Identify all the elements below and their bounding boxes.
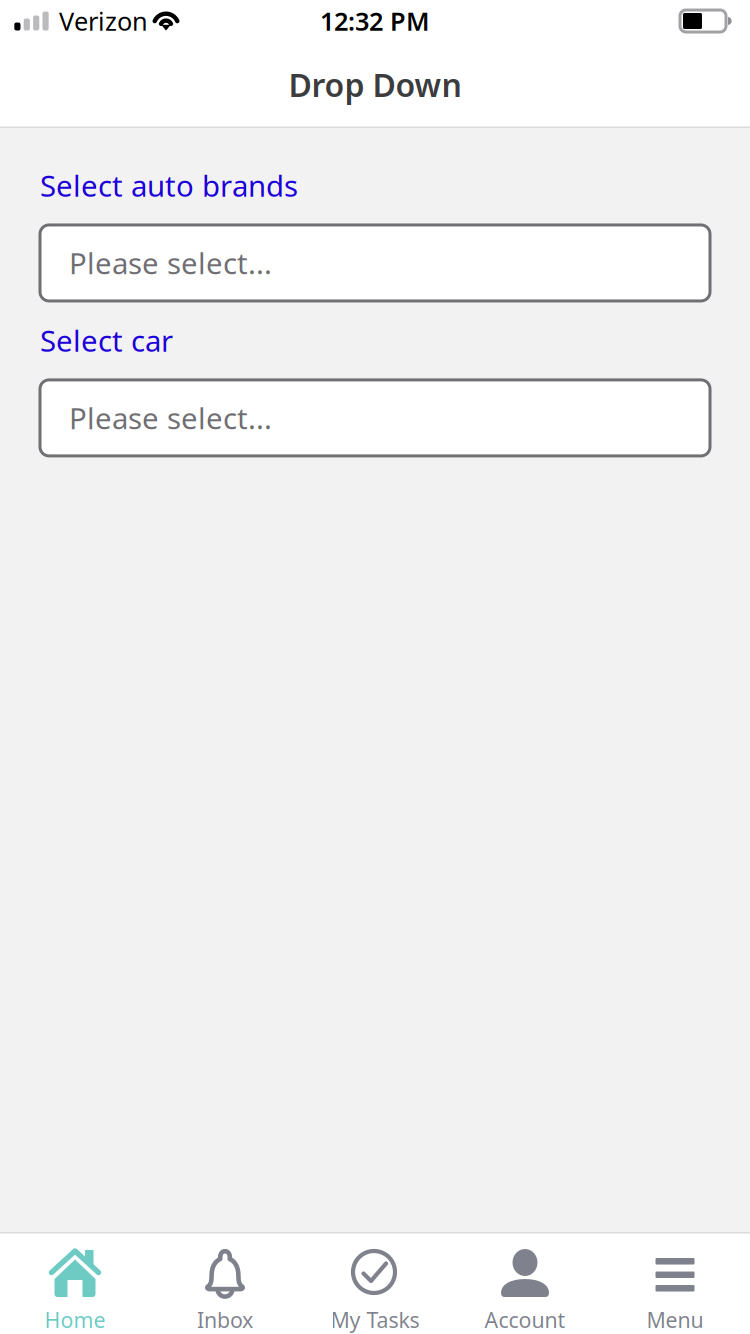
- button[interactable]: Account: [450, 1232, 600, 1334]
- staticText: Verizon: [59, 4, 148, 38]
- staticText: Drop Down: [288, 63, 461, 106]
- staticText: Menu: [646, 1306, 703, 1334]
- button[interactable]: Please select...: [40, 380, 710, 456]
- staticText: My Tasks: [330, 1306, 419, 1334]
- button[interactable]: Please select...: [40, 225, 710, 301]
- staticText: 12:32 PM: [320, 4, 430, 38]
- staticText: Please select...: [69, 398, 272, 437]
- button[interactable]: Menu: [600, 1232, 750, 1334]
- button[interactable]: Home: [0, 1232, 150, 1334]
- staticText: Account: [484, 1306, 565, 1334]
- staticText: Home: [44, 1306, 105, 1334]
- button[interactable]: Inbox: [150, 1232, 300, 1334]
- staticText: Please select...: [69, 243, 272, 282]
- staticText: Select auto brands: [40, 166, 298, 205]
- staticText: Inbox: [197, 1306, 253, 1334]
- button[interactable]: My Tasks: [300, 1232, 450, 1334]
- staticText: Select car: [40, 321, 173, 360]
